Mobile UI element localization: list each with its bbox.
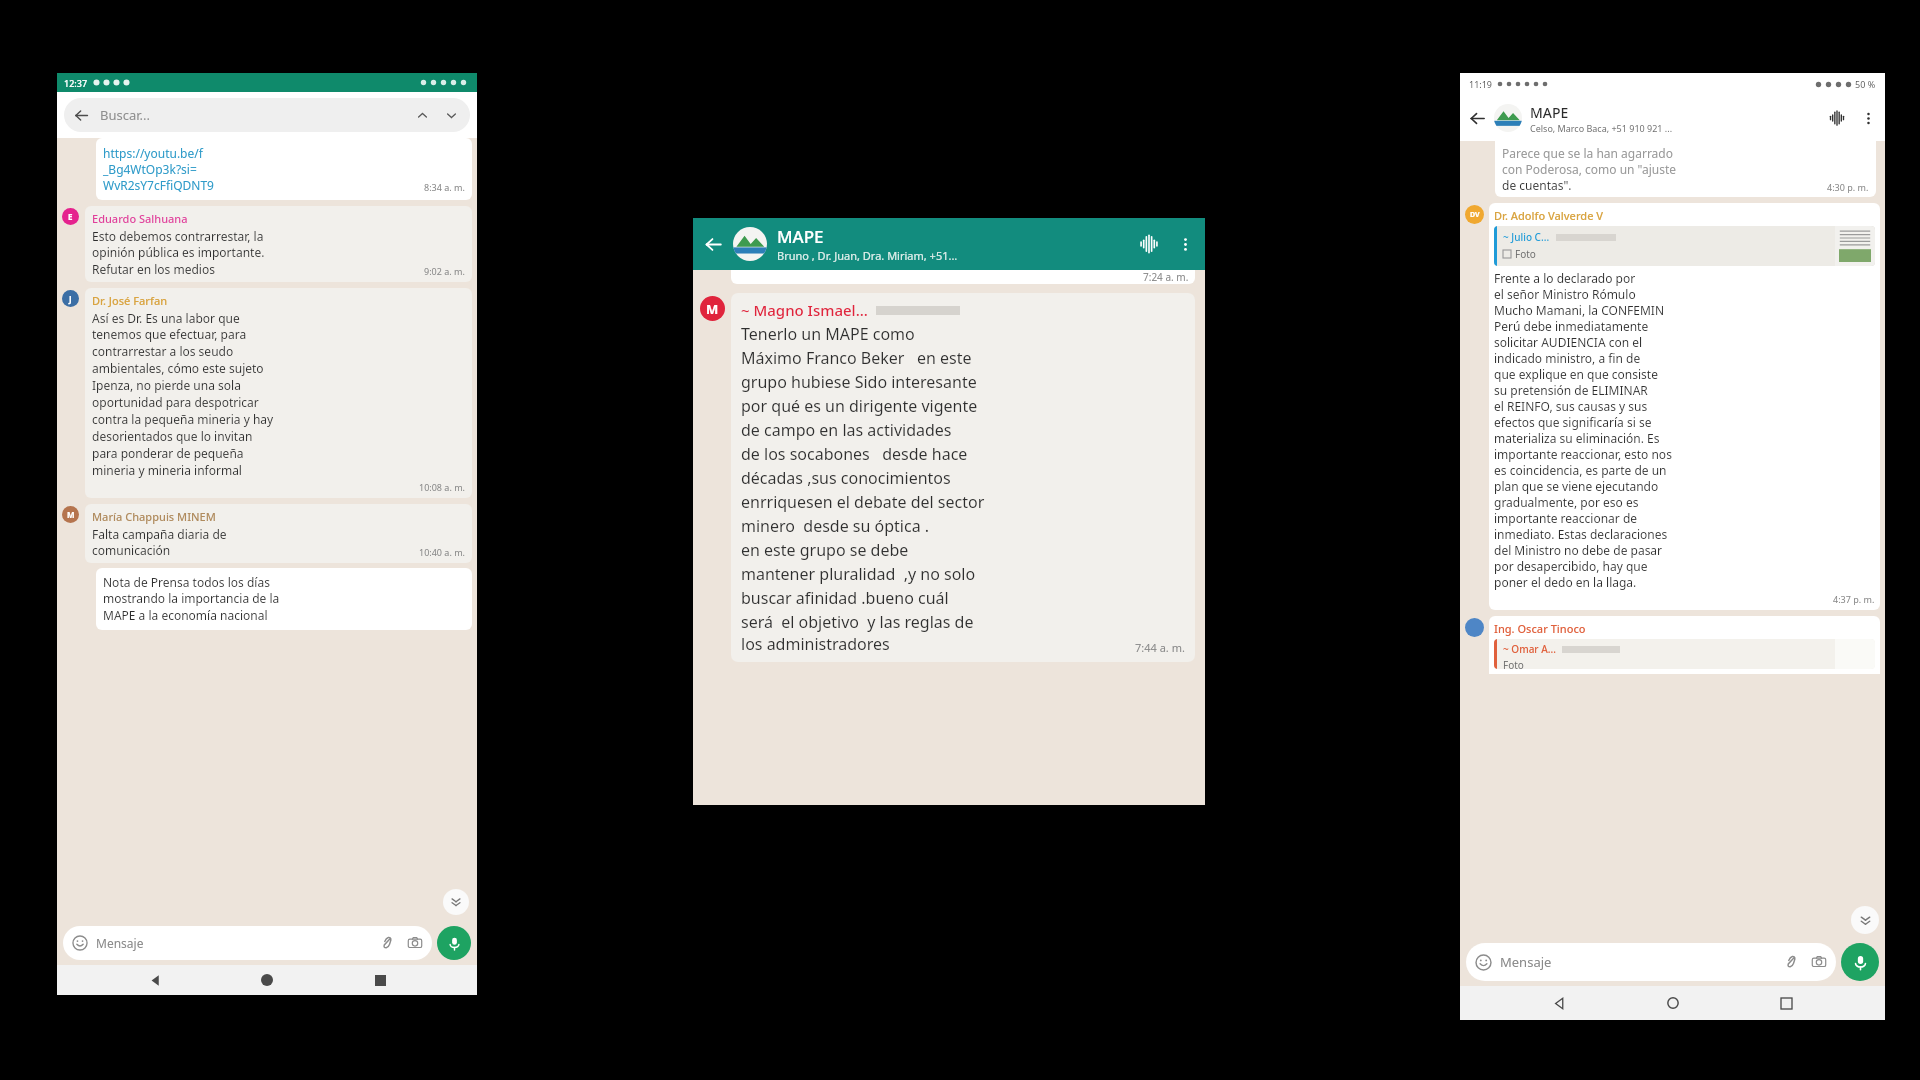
button[interactable]: Home [1658,988,1688,1018]
button[interactable]: ~ Magno Ismael... [731,293,1195,662]
staticText: 4:30 p. m. [1827,181,1869,193]
staticText: Parece que se la han agarrado con Podero… [1502,145,1677,177]
button[interactable]: Back [693,218,1205,270]
button[interactable]: Dr. José Farfan [85,288,472,498]
staticText: Celso, Marco Baca, +51 910 921 ... [1530,122,1673,134]
staticText: J [69,293,72,304]
staticText: MAPE [777,225,824,248]
button[interactable]: Back [1468,109,1487,128]
staticText: ~ Magno Ismael... [741,300,868,320]
staticText: mineria y mineria informal [92,462,242,478]
staticText: Eduardo Salhuana [92,211,188,226]
button[interactable]: Previous result [413,106,432,125]
button[interactable]: https://youtu.be/f _Bg4WtOp3k?si= [96,138,472,200]
button[interactable]: Recents [1771,988,1801,1018]
staticText: 11:19 [1469,78,1493,90]
staticText: 10:40 a. m. [419,546,465,558]
staticText: MAPE [1530,103,1569,122]
button[interactable]: Record voice message [437,926,471,960]
button[interactable]: Record voice message [1841,943,1879,981]
staticText: Mensaje [1500,953,1552,971]
staticText: M [67,509,75,520]
staticText: los administradores [741,633,890,655]
button[interactable]: Eduardo Salhuana [85,206,472,282]
staticText: ~ Julio C... [1503,230,1550,244]
staticText: Foto [1515,247,1536,261]
staticText: Frente a lo declarado por el señor Minis… [1494,270,1672,590]
staticText: DV [1470,210,1480,220]
button[interactable]: Dr. Adolfo Valverde V [1489,203,1880,610]
staticText: M [706,300,719,318]
staticText: Mensaje [96,935,144,951]
staticText: ~ Omar A... [1503,642,1556,656]
staticText: Refutar en los medios [92,261,215,277]
staticText: Tenerlo un MAPE como Máximo Franco Beker… [741,323,985,633]
staticText: María Chappuis MINEM [92,509,216,524]
button[interactable]: Voice call [1138,233,1160,255]
button[interactable]: Back [703,234,724,255]
staticText: Foto [1503,658,1524,669]
staticText: 12:37 [64,77,88,89]
button[interactable]: ~ Julio C... [1494,226,1875,266]
staticText: 7:24 a. m. [1143,270,1189,284]
staticText: WvR2sY7cFfiQDNT9 [103,177,214,193]
staticText: Así es Dr. Es una labor que tenemos que … [92,310,274,462]
staticText: Ing. Oscar Tinoco [1494,621,1586,636]
staticText: Esto debemos contrarrestar, la opinión p… [92,228,265,261]
staticText: https://youtu.be/f _Bg4WtOp3k?si= [103,145,203,177]
staticText: comunicación [92,542,171,558]
button[interactable]: Mensaje [1466,943,1836,981]
button[interactable]: Recents [365,965,395,995]
button[interactable]: Voice call [1828,109,1846,127]
staticText: 10:08 a. m. [419,481,465,493]
button[interactable]: Scroll to bottom [1851,906,1879,934]
button[interactable]: Back [1544,988,1574,1018]
button[interactable]: More options [1176,235,1195,254]
staticText: E [68,211,73,222]
staticText: Buscar... [100,106,150,124]
staticText: 8:34 a. m. [424,181,465,193]
button[interactable]: Scroll to bottom [443,889,469,915]
button[interactable]: Home [252,965,282,995]
button[interactable]: Back [1460,95,1885,141]
button[interactable]: Nota de Prensa todos los días mostrando … [96,568,472,630]
button[interactable]: More options [1860,110,1877,127]
staticText: Bruno , Dr. Juan, Dra. Miriam, +51... [777,248,958,263]
staticText: de cuentas". [1502,177,1572,193]
staticText: Dr. José Farfan [92,293,168,308]
button[interactable]: Buscar... [64,98,470,132]
staticText: Falta campaña diaria de [92,526,227,542]
button[interactable]: María Chappuis MINEM [85,504,472,563]
staticText: Dr. Adolfo Valverde V [1494,208,1604,223]
staticText: 7:44 a. m. [1135,640,1185,655]
staticText: 9:02 a. m. [424,265,465,277]
staticText: 50 % [1855,78,1876,90]
button[interactable]: Back [140,965,170,995]
button[interactable]: Parece que se la han agarrado con Podero… [1495,141,1876,197]
button[interactable]: Mensaje [63,926,432,960]
staticText: 4:37 p. m. [1833,593,1875,605]
button[interactable]: Next result [442,106,461,125]
button[interactable]: Ing. Oscar Tinoco [1489,616,1880,674]
staticText: Nota de Prensa todos los días mostrando … [103,574,280,624]
